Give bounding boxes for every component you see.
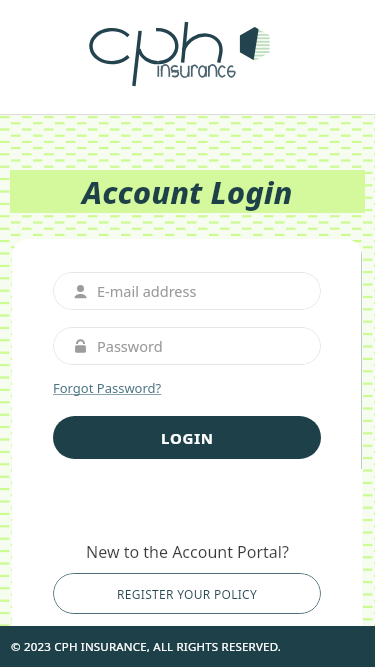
button[interactable]: E-mail address xyxy=(53,272,321,310)
staticText: Account Login xyxy=(82,171,293,213)
staticText: LOGIN xyxy=(161,428,214,448)
staticText: Forgot Password? xyxy=(53,379,162,397)
button[interactable]: Password xyxy=(53,327,321,365)
staticText: New to the Account Portal? xyxy=(86,541,289,563)
button[interactable]: LOGIN xyxy=(53,416,321,459)
staticText: © 2023 CPH INSURANCE, ALL RIGHTS RESERVE… xyxy=(11,639,282,655)
staticText: Password xyxy=(97,336,163,356)
staticText: E-mail address xyxy=(97,281,197,301)
button[interactable]: REGISTER YOUR POLICY xyxy=(53,573,321,614)
staticText: REGISTER YOUR POLICY xyxy=(117,586,258,602)
button[interactable]: Forgot Password? xyxy=(53,377,162,399)
